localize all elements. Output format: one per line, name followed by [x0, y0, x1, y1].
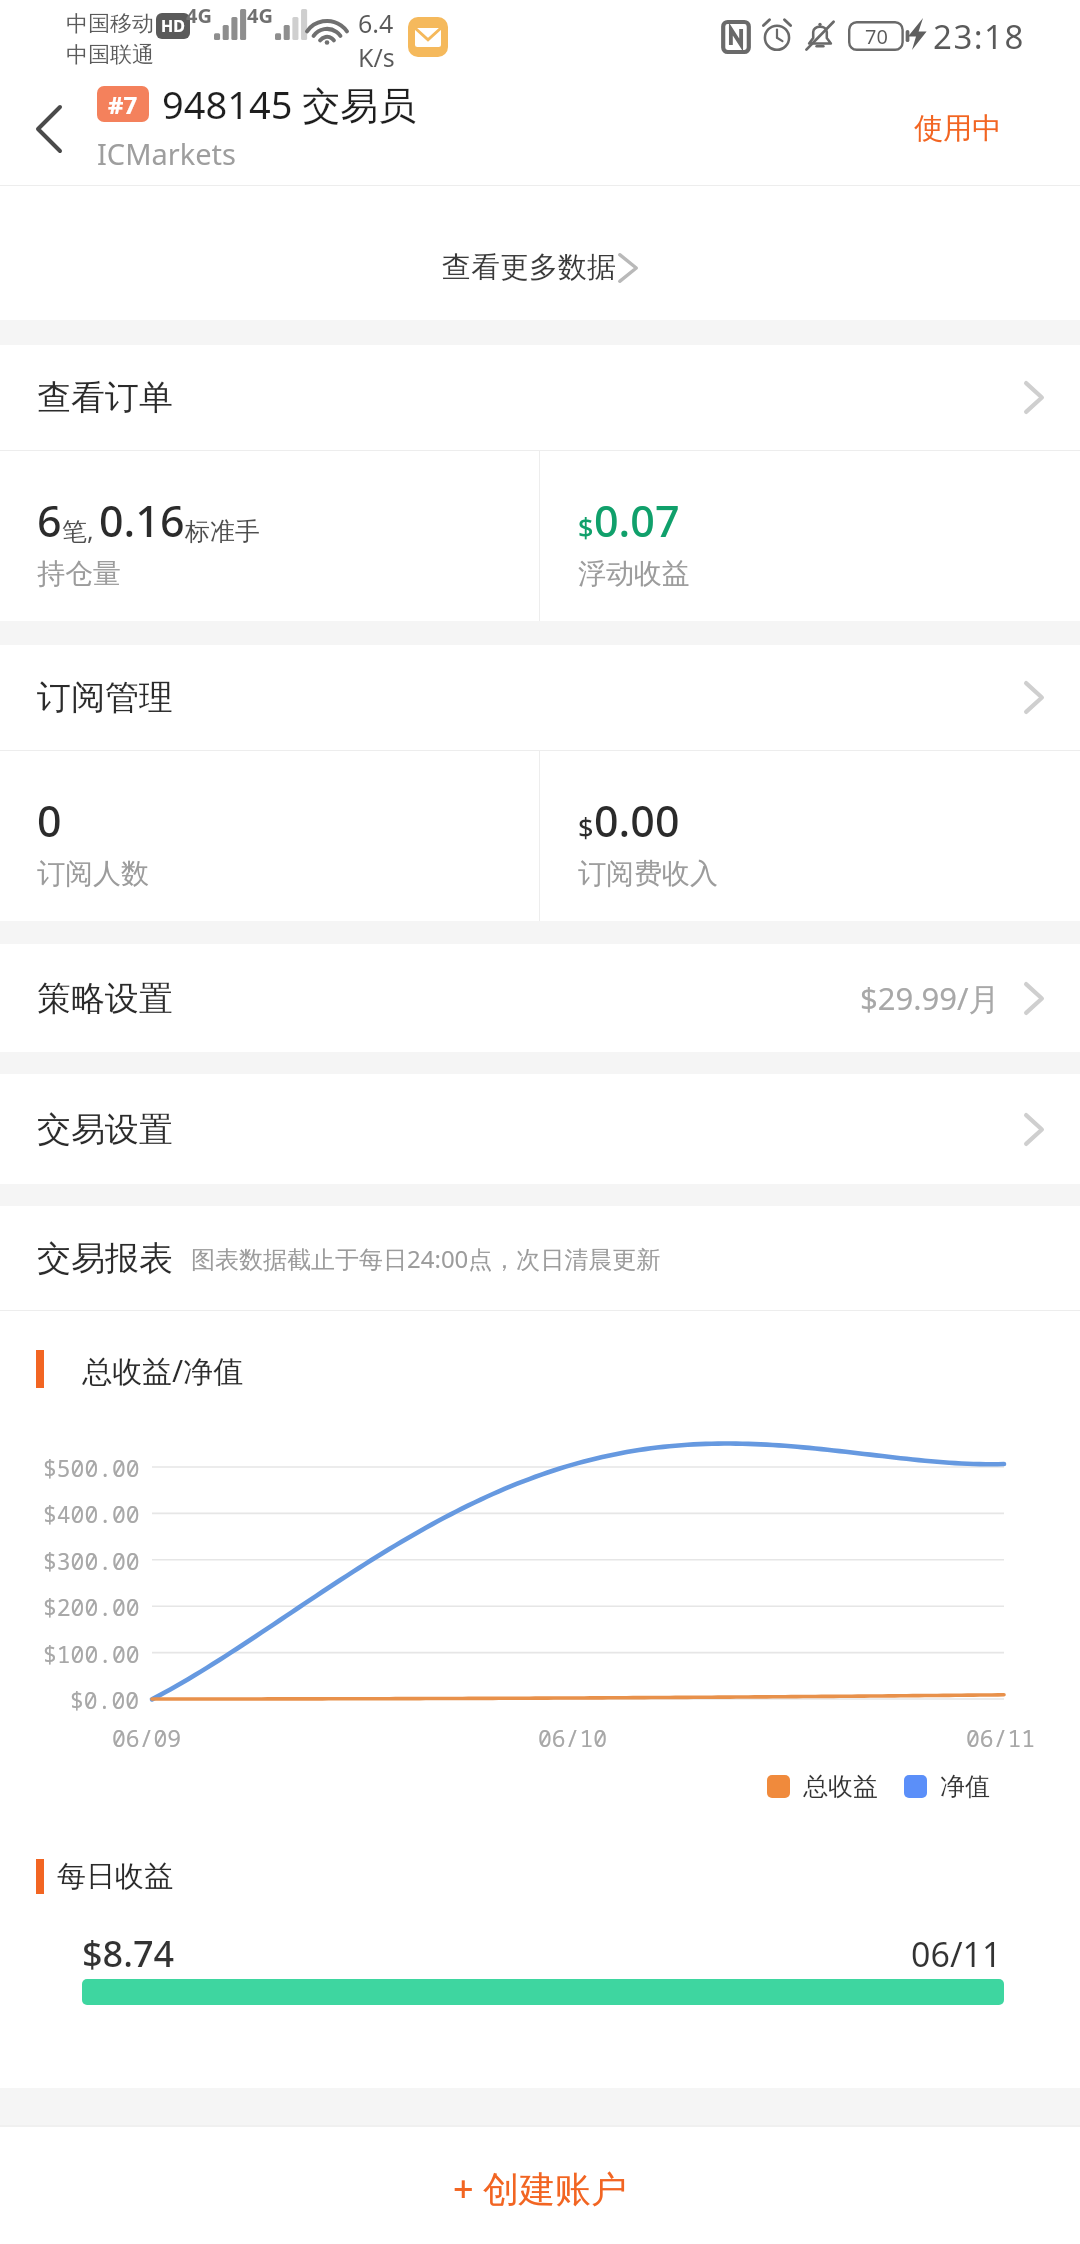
button[interactable]: 交易设置 — [0, 1074, 1080, 1184]
staticText: $29.99/月 — [860, 977, 1000, 1019]
staticText: 中国移动 — [66, 10, 154, 38]
staticText: 06/10 — [538, 1722, 608, 1753]
staticText: 4G — [247, 2, 273, 29]
staticText: $ — [578, 809, 594, 846]
button[interactable]: 查看更多数据 — [0, 186, 1080, 320]
button[interactable]: Back — [0, 72, 97, 185]
staticText: 浮动收益 — [578, 556, 690, 591]
staticText: 0.00 — [594, 791, 680, 850]
staticText: 净值 — [940, 1771, 990, 1802]
staticText: $400.00 — [43, 1498, 140, 1528]
staticText: 6 — [37, 491, 62, 550]
staticText: 4G — [186, 2, 212, 29]
staticText: $100.00 — [43, 1638, 140, 1668]
staticText: ICMarkets — [97, 134, 236, 173]
staticText: 每日收益 — [57, 1858, 173, 1895]
staticText: 6.4 — [358, 6, 394, 40]
staticText: K/s — [358, 40, 395, 74]
staticText: + 创建账户 — [453, 2164, 627, 2213]
button[interactable]: 查看订单 — [0, 345, 1080, 450]
button[interactable]: 使用中 — [896, 100, 1019, 157]
staticText: 交易报表 — [37, 1237, 173, 1280]
staticText: 持仓量 — [37, 556, 121, 591]
staticText: HD — [161, 15, 185, 37]
staticText: 使用中 — [914, 110, 1001, 147]
button[interactable]: 0 — [0, 751, 539, 921]
button[interactable]: 订阅管理 — [0, 645, 1080, 750]
button[interactable]: $ — [540, 451, 1080, 621]
staticText: 总收益/净值 — [82, 1350, 244, 1388]
staticText: 0 — [37, 791, 62, 850]
button[interactable]: 6 — [0, 451, 539, 621]
staticText: 70 — [865, 23, 888, 50]
staticText: #7 — [108, 88, 138, 121]
staticText: 23:18 — [933, 14, 1025, 59]
staticText: 06/09 — [112, 1722, 182, 1753]
button[interactable]: 策略设置 — [0, 944, 1080, 1052]
staticText: 笔, — [62, 513, 94, 547]
staticText: 订阅管理 — [37, 676, 173, 719]
staticText: $300.00 — [43, 1545, 140, 1575]
staticText: 查看订单 — [37, 376, 173, 419]
staticText: 06/11 — [966, 1722, 1036, 1753]
staticText: 查看更多数据 — [442, 249, 616, 286]
staticText: $200.00 — [43, 1591, 140, 1621]
button[interactable]: $ — [540, 751, 1080, 921]
staticText: $8.74 — [82, 1929, 175, 1978]
staticText: 图表数据截止于每日24:00点，次日清晨更新 — [191, 1242, 661, 1275]
staticText: 交易设置 — [37, 1108, 173, 1151]
staticText: 948145 交易员 — [162, 78, 417, 130]
staticText: 订阅费收入 — [578, 856, 718, 891]
staticText: 策略设置 — [37, 977, 173, 1020]
button[interactable]: + 创建账户 — [0, 2125, 1080, 2244]
staticText: 0.16 — [99, 491, 185, 550]
staticText: 标准手 — [185, 516, 260, 547]
staticText: 0.07 — [594, 491, 680, 550]
staticText: $500.00 — [43, 1452, 140, 1482]
staticText: 总收益 — [803, 1771, 878, 1802]
staticText: $ — [578, 509, 594, 546]
staticText: 中国联通 — [66, 41, 154, 69]
staticText: 06/11 — [911, 1931, 1002, 1977]
staticText: 订阅人数 — [37, 856, 149, 891]
staticText: $0.00 — [70, 1684, 140, 1714]
